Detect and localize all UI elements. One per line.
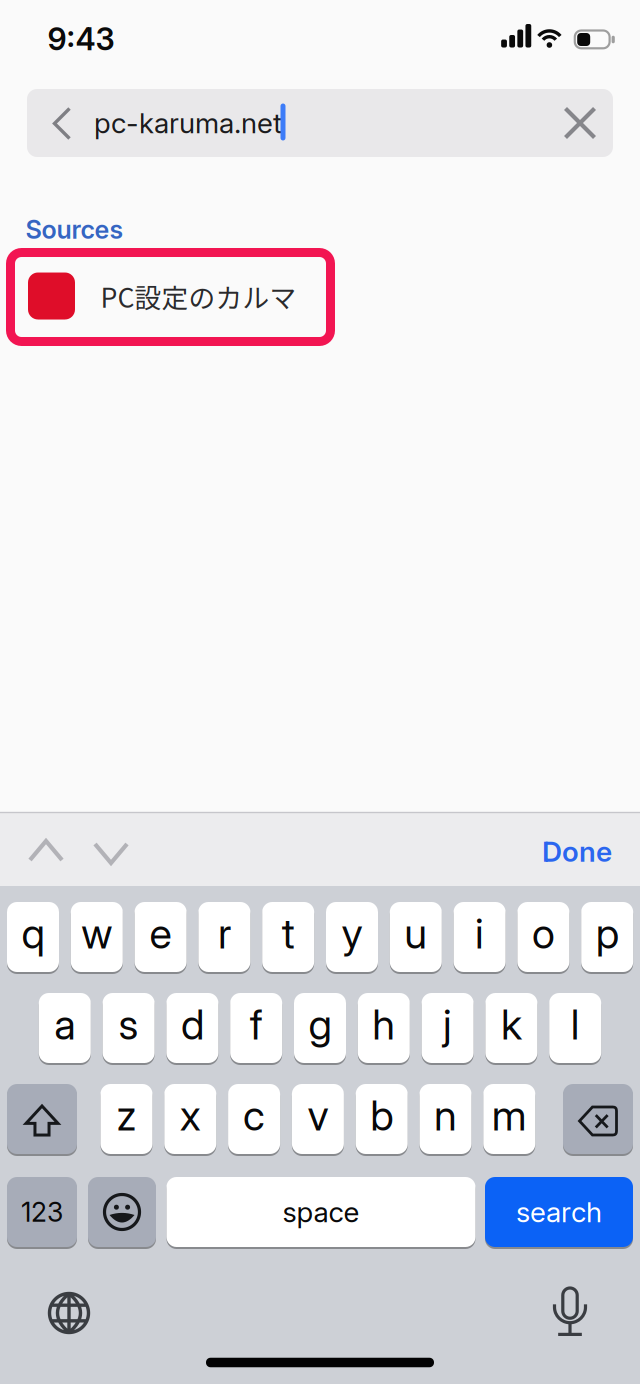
staticText: r	[218, 908, 231, 958]
button[interactable]: m	[483, 1084, 535, 1154]
button[interactable]: c	[228, 1084, 280, 1154]
button[interactable]	[563, 1084, 633, 1154]
button[interactable]: k	[485, 993, 537, 1063]
staticText: e	[150, 908, 172, 958]
button[interactable]	[21, 825, 71, 875]
staticText: g	[308, 999, 331, 1049]
staticText: pc-karuma.net	[94, 106, 282, 140]
button[interactable]: 123	[7, 1177, 77, 1247]
staticText: i	[475, 908, 484, 958]
staticText: d	[181, 999, 204, 1049]
button[interactable]: w	[71, 902, 123, 972]
button[interactable]: p	[581, 902, 633, 972]
staticText: l	[571, 999, 580, 1049]
staticText: n	[434, 1090, 457, 1140]
button[interactable]: e	[135, 902, 187, 972]
button[interactable]: x	[164, 1084, 216, 1154]
staticText: h	[372, 999, 395, 1049]
button[interactable]	[39, 1283, 99, 1343]
staticText: search	[516, 1195, 602, 1229]
button[interactable]: t	[262, 902, 314, 972]
button[interactable]: v	[292, 1084, 344, 1154]
staticText: q	[21, 908, 44, 958]
staticText: c	[243, 1090, 265, 1140]
button[interactable]	[556, 95, 604, 151]
staticText: a	[54, 999, 75, 1049]
button[interactable]: y	[326, 902, 378, 972]
staticText: f	[250, 999, 263, 1049]
staticText: o	[532, 908, 555, 958]
button[interactable]: a	[39, 993, 91, 1063]
staticText: s	[119, 999, 139, 1049]
staticText: j	[443, 999, 452, 1049]
staticText: x	[180, 1090, 201, 1140]
button[interactable]: PC設定のカルマ	[6, 248, 335, 346]
button[interactable]: q	[7, 902, 59, 972]
staticText: m	[492, 1090, 527, 1140]
staticText: 9:43	[47, 20, 114, 57]
button[interactable]: f	[230, 993, 282, 1063]
staticText: Done	[542, 835, 612, 868]
staticText: w	[81, 908, 112, 958]
button[interactable]: r	[198, 902, 250, 972]
button[interactable]	[88, 1177, 156, 1247]
button[interactable]: Done	[517, 823, 637, 879]
button[interactable]	[27, 89, 613, 157]
button[interactable]: g	[294, 993, 346, 1063]
staticText: z	[116, 1090, 136, 1140]
button[interactable]: space	[166, 1177, 475, 1247]
staticText: 123	[21, 1196, 63, 1228]
staticText: p	[596, 908, 619, 958]
button[interactable]: j	[422, 993, 474, 1063]
staticText: Sources	[25, 214, 123, 245]
button[interactable]	[40, 95, 84, 151]
button[interactable]: d	[166, 993, 218, 1063]
staticText: PC設定のカルマ	[100, 277, 296, 315]
button[interactable]: o	[517, 902, 569, 972]
button[interactable]: search	[485, 1177, 633, 1247]
button[interactable]	[86, 828, 136, 878]
button[interactable]: s	[103, 993, 155, 1063]
staticText: v	[307, 1090, 328, 1140]
button[interactable]: b	[356, 1084, 408, 1154]
staticText: t	[282, 908, 295, 958]
button[interactable]: h	[358, 993, 410, 1063]
button[interactable]: l	[549, 993, 601, 1063]
button[interactable]	[7, 1084, 77, 1154]
staticText: u	[404, 908, 427, 958]
staticText: b	[370, 1090, 393, 1140]
button[interactable]	[540, 1282, 600, 1342]
button[interactable]: z	[100, 1084, 152, 1154]
button[interactable]: n	[419, 1084, 471, 1154]
staticText: y	[341, 908, 362, 958]
staticText: k	[501, 999, 522, 1049]
button[interactable]: u	[390, 902, 442, 972]
button[interactable]: i	[454, 902, 506, 972]
staticText: space	[282, 1195, 359, 1229]
